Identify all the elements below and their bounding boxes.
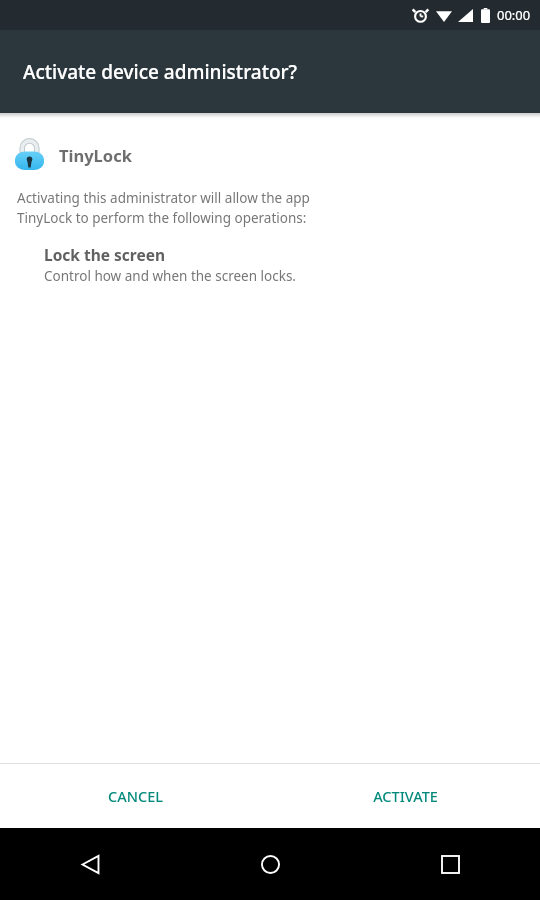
- button[interactable]: CANCEL: [0, 764, 270, 828]
- button[interactable]: ACTIVATE: [270, 764, 540, 828]
- button[interactable]: Home: [180, 828, 360, 900]
- staticText: 00:00: [497, 6, 531, 24]
- staticText: Control how and when the screen locks.: [44, 267, 296, 285]
- button[interactable]: Back: [0, 828, 180, 900]
- staticText: Activating this administrator will allow…: [17, 189, 310, 227]
- staticText: ACTIVATE: [373, 786, 438, 806]
- staticText: TinyLock: [59, 144, 132, 166]
- staticText: Lock the screen: [44, 244, 166, 265]
- staticText: CANCEL: [108, 786, 163, 806]
- staticText: Activate device administrator?: [23, 59, 298, 85]
- button[interactable]: Recent apps: [360, 828, 540, 900]
